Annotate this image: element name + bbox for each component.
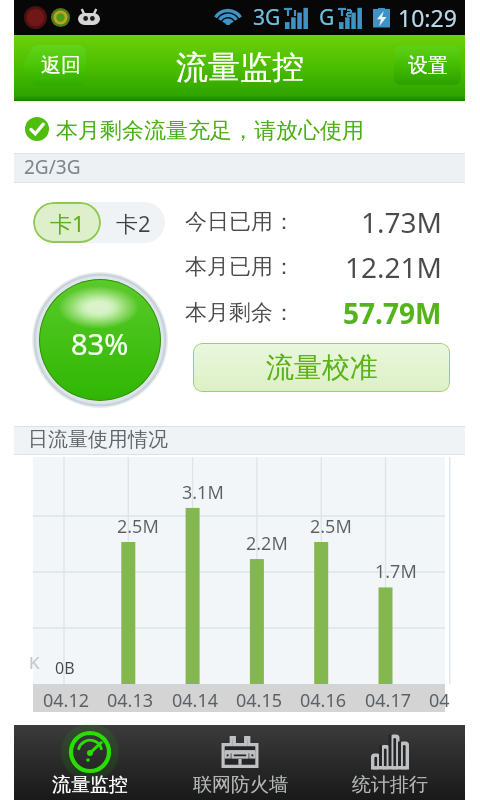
staticText: 流量监控 — [176, 47, 304, 87]
staticText: 3.1M — [182, 480, 224, 505]
staticText: 今日已用： — [185, 208, 295, 236]
staticText: K — [29, 651, 40, 674]
staticText: 0B — [55, 657, 75, 679]
staticText: 本月已用： — [185, 253, 295, 281]
button[interactable]: 设置 — [394, 46, 461, 85]
button[interactable]: 流量校准 — [193, 343, 450, 392]
staticText: 04.13 — [107, 688, 154, 713]
staticText: 返回 — [41, 53, 81, 78]
staticText: 卡2 — [116, 208, 151, 238]
staticText: 流量监控 — [52, 773, 128, 797]
staticText: 04 — [429, 688, 450, 713]
staticText: 83% — [71, 324, 129, 363]
staticText: 流量校准 — [266, 350, 378, 385]
staticText: 2.2M — [246, 531, 288, 556]
button[interactable]: 流量监控 — [14, 725, 165, 800]
staticText: 2.5M — [310, 514, 352, 539]
button[interactable]: 联网防火墙 — [165, 725, 315, 800]
staticText: 设置 — [408, 53, 448, 78]
staticText: 04.15 — [236, 688, 283, 713]
staticText: 2.5M — [117, 514, 159, 539]
staticText: 04.14 — [172, 688, 219, 713]
staticText: 本月剩余流量充足，请放心使用 — [56, 117, 364, 141]
staticText: 统计排行 — [352, 773, 428, 797]
button[interactable]: 卡2 — [101, 202, 165, 243]
staticText: 3G — [253, 3, 281, 32]
staticText: 10:29 — [398, 2, 457, 33]
staticText: 1.73M — [361, 203, 442, 241]
button[interactable]: 统计排行 — [315, 725, 465, 800]
staticText: 联网防火墙 — [193, 773, 288, 797]
staticText: 57.79M — [343, 294, 442, 332]
staticText: G — [319, 3, 335, 32]
staticText: 12.21M — [345, 248, 442, 286]
button[interactable]: 卡1 — [33, 202, 101, 243]
staticText: 本月剩余： — [185, 299, 295, 327]
staticText: 2G/3G — [24, 154, 81, 180]
staticText: 04.12 — [43, 688, 90, 713]
staticText: 卡1 — [50, 208, 85, 238]
staticText: 04.16 — [300, 688, 347, 713]
staticText: 1.7M — [375, 559, 417, 584]
staticText: 04.17 — [365, 688, 412, 713]
staticText: 日流量使用情况 — [28, 427, 168, 452]
button[interactable]: 返回 — [21, 45, 86, 86]
